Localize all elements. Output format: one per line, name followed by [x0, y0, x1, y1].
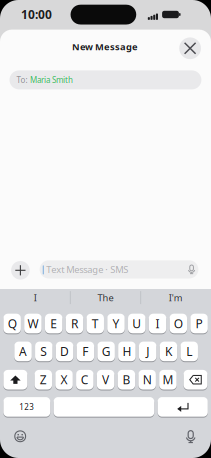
- button[interactable]: To:: [9, 70, 201, 89]
- button[interactable]: N: [138, 369, 156, 390]
- button[interactable]: U: [128, 313, 145, 334]
- staticText: I: [155, 315, 159, 331]
- button[interactable]: Add attachment: [11, 261, 30, 280]
- button[interactable]: E: [45, 313, 62, 334]
- button[interactable]: Close: [179, 37, 201, 59]
- staticText: To:: [16, 75, 27, 85]
- staticText: K: [165, 343, 172, 359]
- button[interactable]: X: [55, 369, 73, 390]
- button[interactable]: Z: [34, 369, 52, 390]
- staticText: J: [146, 343, 149, 359]
- button[interactable]: Y: [107, 313, 125, 334]
- staticText: Z: [40, 372, 47, 388]
- staticText: Maria Smith: [30, 75, 73, 85]
- staticText: X: [61, 372, 68, 388]
- button[interactable]: I: [149, 313, 166, 334]
- button[interactable]: M: [159, 369, 177, 390]
- staticText: I: [34, 291, 37, 304]
- button[interactable]: A: [14, 341, 32, 362]
- staticText: T: [92, 315, 99, 331]
- staticText: U: [132, 315, 141, 331]
- staticText: H: [122, 343, 131, 359]
- button[interactable]: K: [160, 341, 177, 362]
- button[interactable]: O: [170, 313, 187, 334]
- staticText: E: [50, 315, 57, 331]
- staticText: G: [102, 343, 111, 359]
- staticText: Text Message · SMS: [46, 263, 128, 276]
- staticText: C: [81, 372, 89, 388]
- staticText: V: [102, 372, 109, 388]
- button[interactable]: W: [24, 313, 42, 334]
- button[interactable]: B: [118, 369, 135, 390]
- staticText: New Message: [72, 40, 138, 53]
- staticText: L: [186, 343, 192, 359]
- button[interactable]: T: [86, 313, 104, 334]
- button[interactable]: space: [54, 397, 154, 417]
- button[interactable]: J: [139, 341, 156, 362]
- button[interactable]: The: [72, 290, 138, 305]
- staticText: Q: [8, 315, 17, 331]
- staticText: A: [19, 343, 27, 359]
- staticText: 123: [19, 402, 34, 412]
- staticText: S: [40, 343, 47, 359]
- button[interactable]: Emoji: [12, 428, 28, 444]
- staticText: D: [60, 343, 69, 359]
- staticText: Y: [112, 315, 119, 331]
- button[interactable]: P: [190, 313, 208, 334]
- button[interactable]: Delete: [184, 369, 207, 390]
- staticText: M: [162, 372, 173, 388]
- button[interactable]: I'm: [143, 290, 209, 305]
- staticText: O: [174, 315, 183, 331]
- staticText: 10:00: [21, 6, 52, 22]
- button[interactable]: Text Message SMS: [40, 260, 198, 278]
- button[interactable]: 123: [3, 397, 50, 417]
- button[interactable]: G: [97, 341, 115, 362]
- staticText: P: [196, 315, 203, 331]
- button[interactable]: Q: [3, 313, 21, 334]
- button[interactable]: Shift: [3, 369, 27, 390]
- staticText: B: [122, 372, 130, 388]
- button[interactable]: Return: [158, 397, 208, 417]
- button[interactable]: R: [66, 313, 83, 334]
- button[interactable]: D: [56, 341, 73, 362]
- button[interactable]: Dictation: [183, 429, 199, 445]
- staticText: I'm: [169, 291, 183, 304]
- button[interactable]: I: [2, 290, 68, 305]
- button[interactable]: C: [76, 369, 94, 390]
- button[interactable]: L: [180, 341, 198, 362]
- staticText: F: [82, 343, 88, 359]
- button[interactable]: V: [97, 369, 114, 390]
- button[interactable]: F: [77, 341, 94, 362]
- staticText: R: [71, 315, 78, 331]
- staticText: N: [143, 372, 152, 388]
- button[interactable]: S: [35, 341, 53, 362]
- staticText: The: [97, 291, 113, 304]
- staticText: W: [27, 315, 38, 331]
- button[interactable]: H: [118, 341, 136, 362]
